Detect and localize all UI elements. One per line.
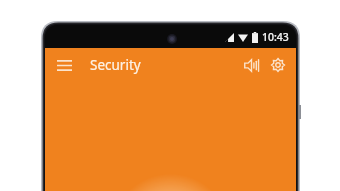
staticText: Security [90,56,141,74]
button[interactable]: Settings [265,52,291,78]
staticText: 10:43 [262,30,289,44]
button[interactable]: Open navigation menu [49,50,79,80]
button[interactable]: Sound settings [238,52,264,78]
